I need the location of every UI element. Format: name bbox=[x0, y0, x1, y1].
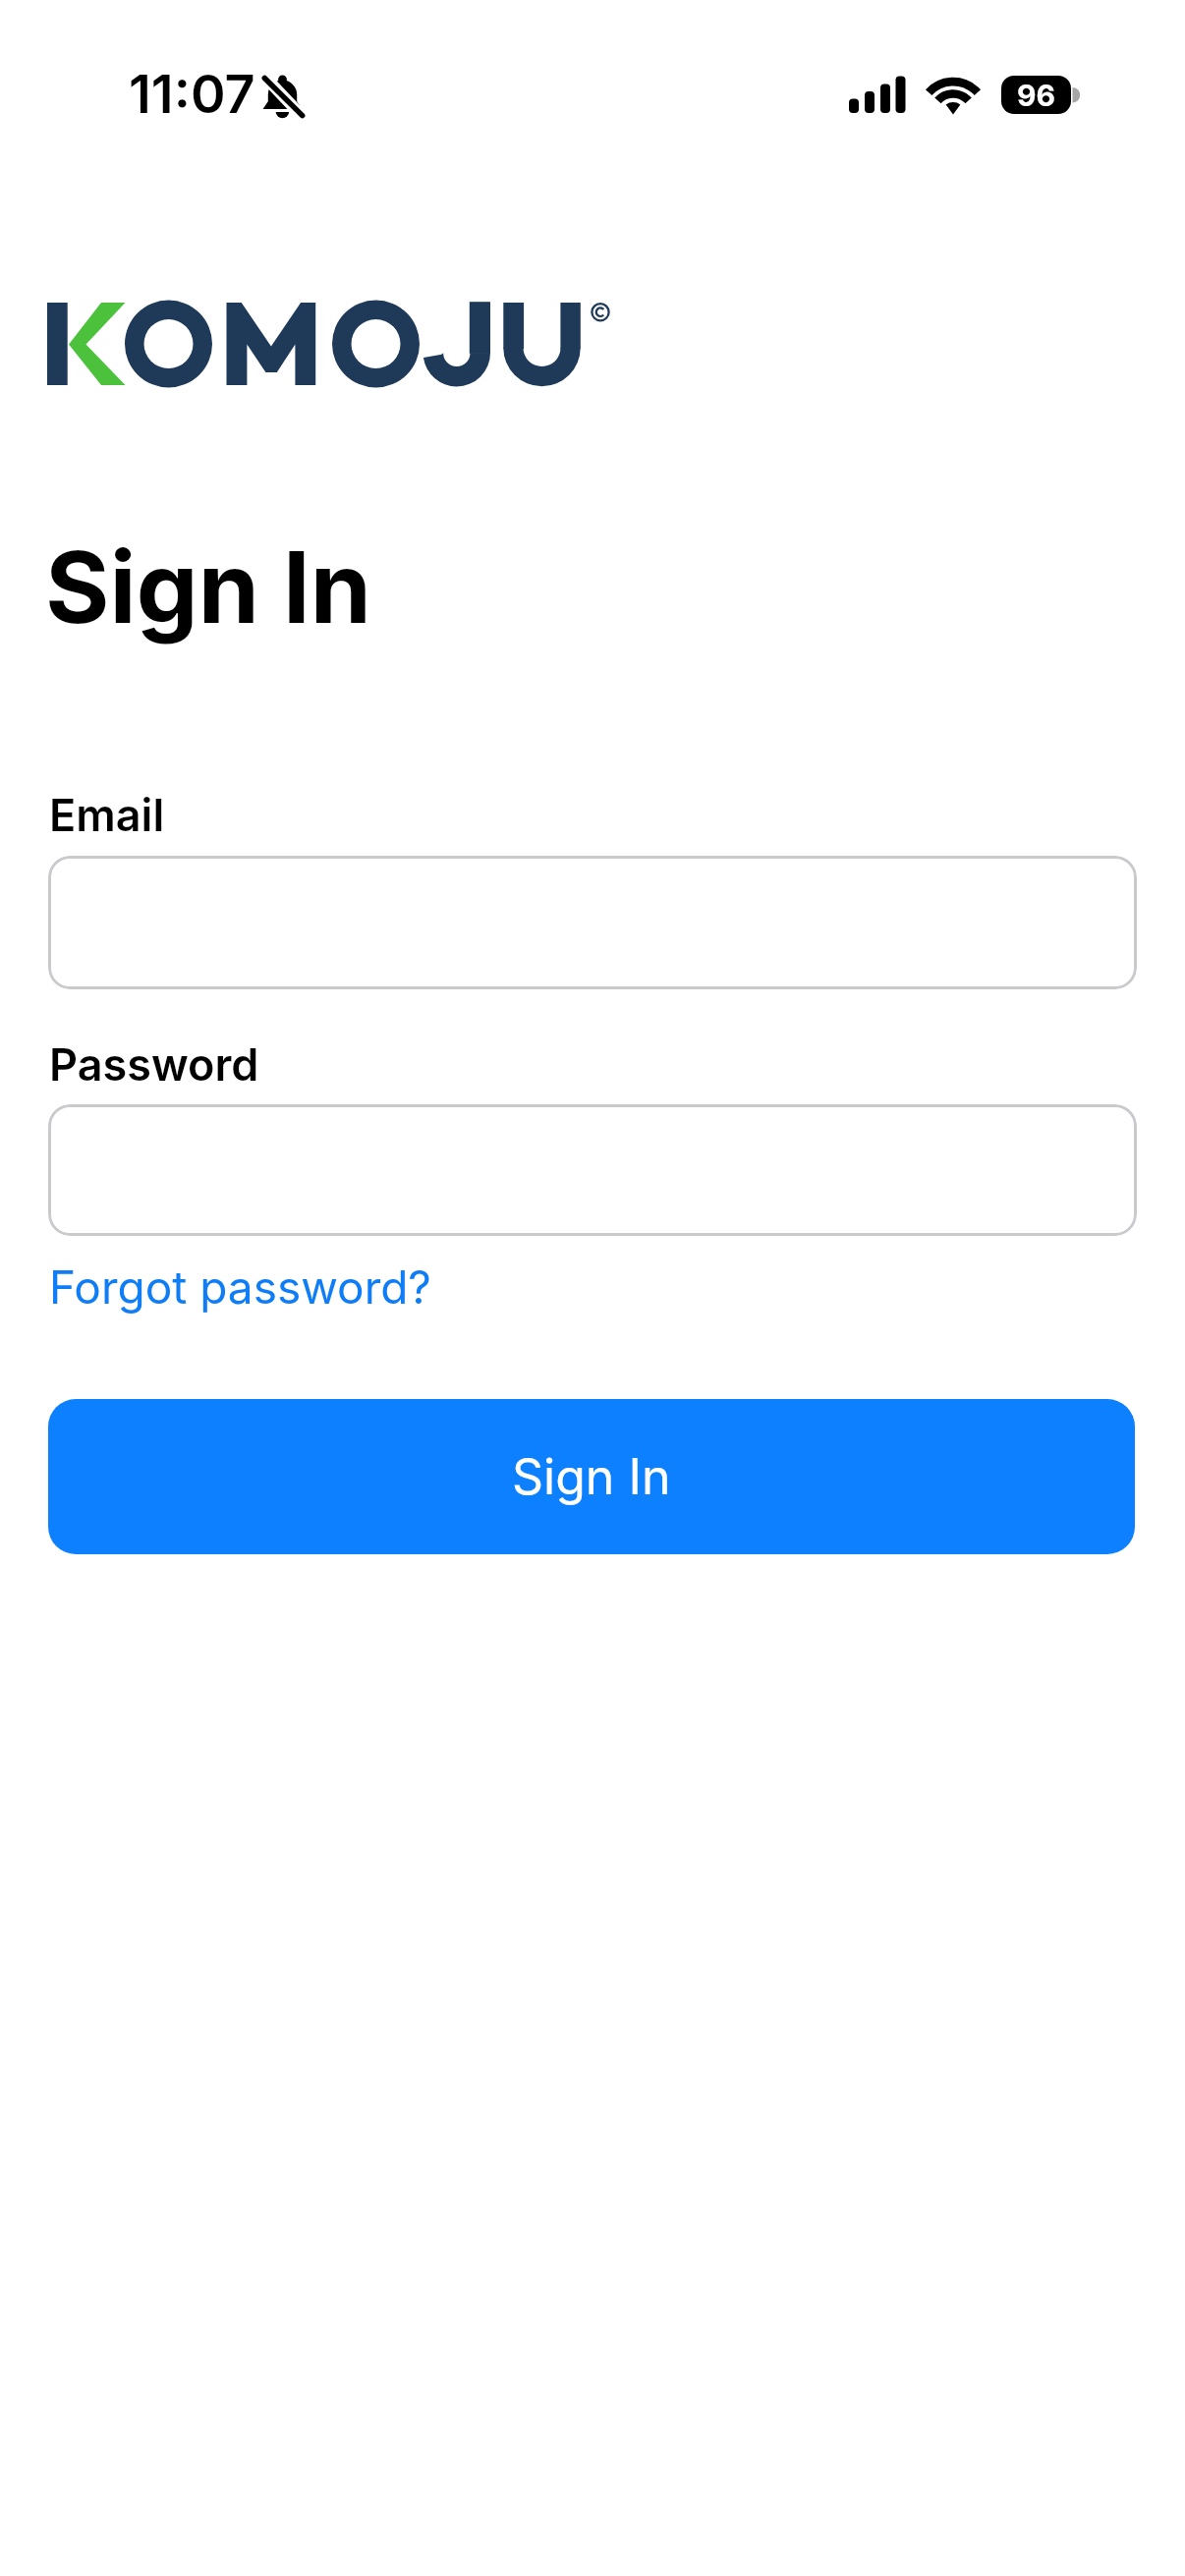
staticText: Forgot password? bbox=[49, 1260, 431, 1315]
staticText: Sign In bbox=[512, 1447, 671, 1506]
button[interactable] bbox=[48, 1104, 1137, 1236]
staticText: Email bbox=[49, 788, 165, 841]
staticText: 96 bbox=[1017, 78, 1055, 113]
staticText: Sign In bbox=[45, 528, 372, 646]
button[interactable] bbox=[48, 856, 1137, 989]
staticText: 11:07 bbox=[129, 62, 255, 126]
button[interactable]: Sign In bbox=[48, 1399, 1135, 1554]
button[interactable]: Forgot password? bbox=[49, 1260, 431, 1315]
staticText: Password bbox=[49, 1037, 259, 1091]
